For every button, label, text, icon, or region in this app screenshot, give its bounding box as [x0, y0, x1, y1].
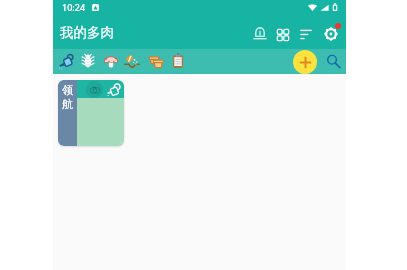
button[interactable]: Photo: [58, 80, 124, 146]
button[interactable]: Notifications: [252, 26, 268, 42]
staticText: 航: [62, 97, 73, 111]
staticText: 10:24: [62, 1, 86, 13]
button[interactable]: Settings: [323, 26, 339, 42]
button[interactable]: Notes: [169, 52, 187, 70]
button[interactable]: Pots: [147, 52, 165, 70]
button[interactable]: Sort: [298, 26, 314, 42]
button[interactable]: Pests: [79, 52, 97, 70]
staticText: 领: [62, 83, 73, 97]
button[interactable]: Watering: [58, 52, 76, 70]
staticText: 我的多肉: [60, 24, 114, 41]
button[interactable]: Photo: [86, 81, 103, 98]
button[interactable]: Water plant: [105, 81, 122, 98]
button[interactable]: Mushroom: [102, 52, 120, 70]
button[interactable]: Grid view: [275, 26, 291, 42]
button[interactable]: Search: [325, 53, 343, 71]
button[interactable]: Fertilizer: [123, 52, 141, 70]
button[interactable]: Add plant: [293, 50, 317, 74]
